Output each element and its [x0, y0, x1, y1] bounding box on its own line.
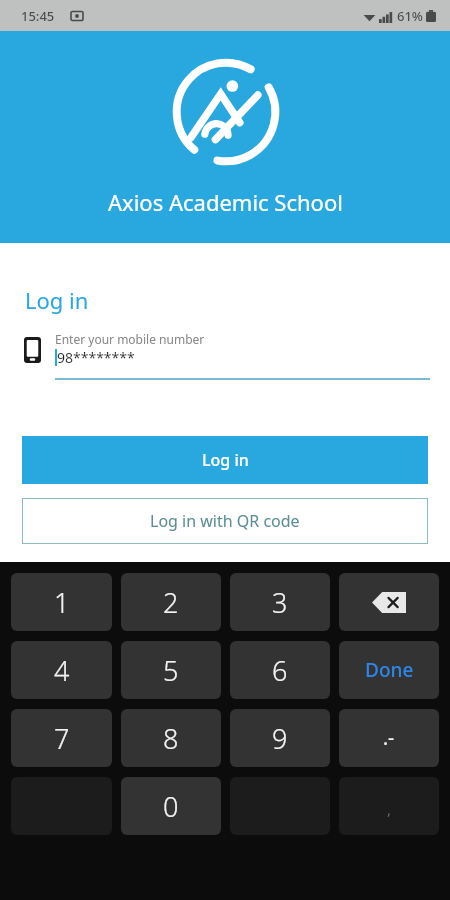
staticText: 2	[163, 584, 179, 621]
staticText: 7	[54, 720, 70, 757]
button[interactable]: 0	[121, 777, 221, 835]
staticText: 9	[272, 720, 288, 757]
button[interactable]: 9	[230, 709, 330, 767]
button[interactable]: Done	[339, 641, 439, 699]
staticText: 0	[163, 788, 179, 825]
button[interactable]: .-	[339, 709, 439, 767]
button[interactable]: 6	[230, 641, 330, 699]
staticText: 4	[54, 652, 70, 689]
button[interactable]: Log in with QR code	[22, 498, 428, 544]
button[interactable]: 7	[11, 709, 112, 767]
staticText: 3	[272, 584, 288, 621]
staticText: Done	[365, 657, 414, 683]
button[interactable]: 8	[121, 709, 221, 767]
staticText: Log in with QR code	[150, 510, 300, 532]
button[interactable]: 1	[11, 573, 112, 631]
staticText: 15:45	[21, 7, 55, 25]
button[interactable]: Log in	[22, 436, 428, 484]
staticText: 5	[163, 652, 179, 689]
staticText: 6	[272, 652, 288, 689]
button[interactable]: Backspace	[339, 573, 439, 631]
staticText: ,	[387, 799, 392, 819]
staticText: 1	[54, 584, 70, 621]
staticText: Enter your mobile number	[55, 331, 205, 347]
staticText: 98********	[57, 348, 135, 367]
staticText: .-	[383, 725, 395, 751]
staticText: Log in	[202, 449, 249, 471]
button[interactable]: 5	[121, 641, 221, 699]
staticText: 8	[163, 720, 179, 757]
button[interactable]: 2	[121, 573, 221, 631]
staticText: Log in	[25, 285, 89, 315]
staticText: 61%	[397, 7, 423, 25]
button[interactable]: 3	[230, 573, 330, 631]
staticText: Axios Academic School	[108, 187, 343, 217]
button[interactable]: 4	[11, 641, 112, 699]
